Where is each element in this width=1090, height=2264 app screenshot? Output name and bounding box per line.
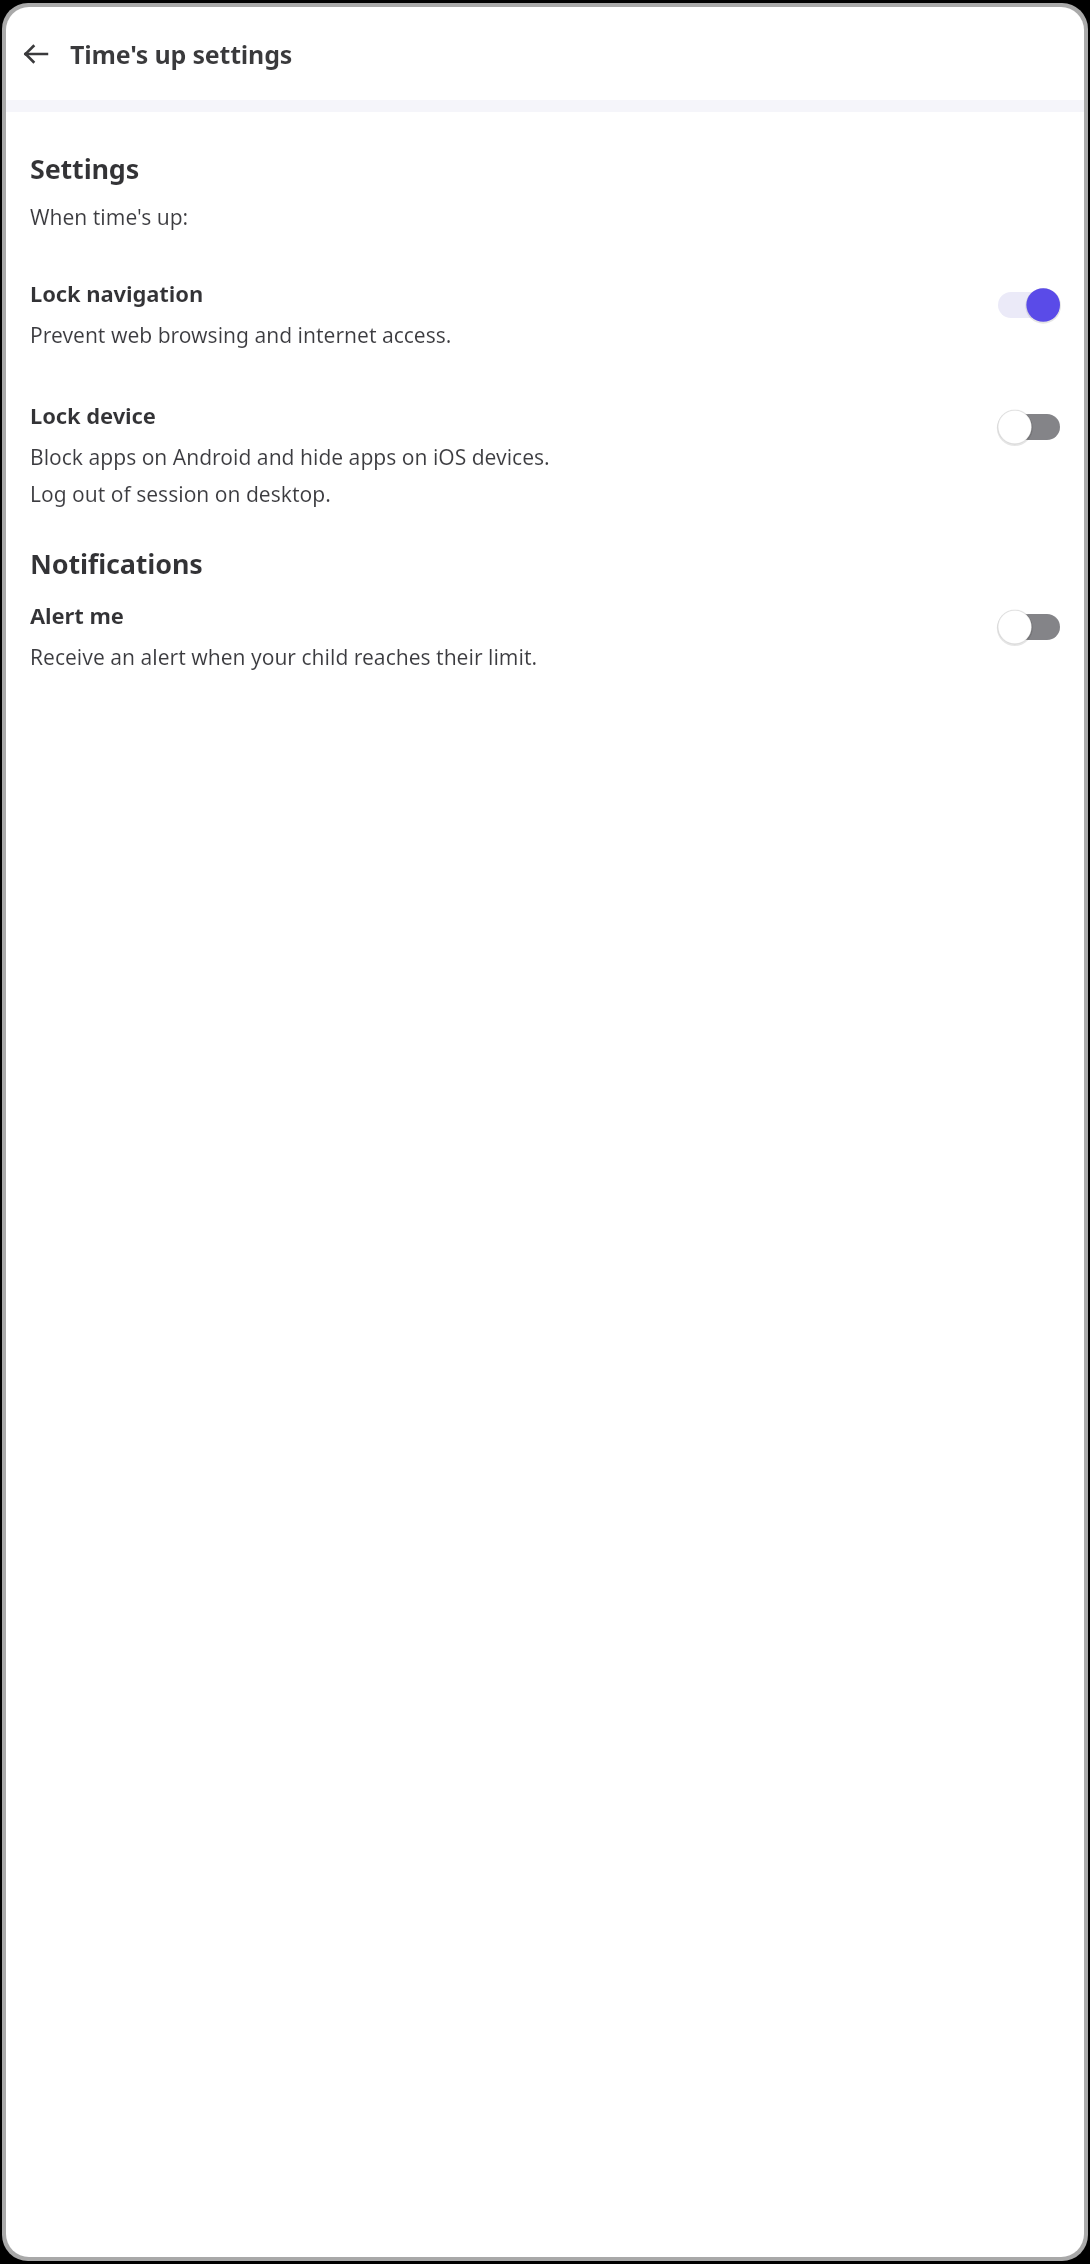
- staticText: Prevent web browsing and internet access…: [30, 321, 452, 350]
- staticText: Time's up settings: [70, 37, 293, 71]
- staticText: Block apps on Android and hide apps on i…: [30, 443, 550, 472]
- button[interactable]: Lock navigation on: [998, 284, 1060, 326]
- staticText: Settings: [30, 150, 140, 187]
- staticText: Alert me: [30, 600, 124, 630]
- button[interactable]: Lock device: [30, 400, 1060, 509]
- staticText: Lock navigation: [30, 278, 204, 308]
- button[interactable]: Lock device off: [998, 406, 1060, 448]
- button[interactable]: Alert me off: [998, 606, 1060, 648]
- staticText: Notifications: [30, 545, 203, 582]
- staticText: Receive an alert when your child reaches…: [30, 643, 538, 672]
- staticText: Lock device: [30, 400, 156, 430]
- button[interactable]: Alert me: [30, 600, 1060, 672]
- button[interactable]: Back: [14, 32, 58, 76]
- staticText: Log out of session on desktop.: [30, 480, 331, 509]
- button[interactable]: Lock navigation: [30, 278, 1060, 350]
- staticText: When time's up:: [30, 203, 189, 232]
